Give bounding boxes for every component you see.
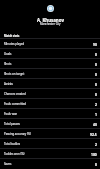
button[interactable]: Fouls committed (0, 98, 100, 108)
button[interactable]: Total tackles (0, 138, 100, 148)
staticText: 0 (95, 72, 97, 76)
staticText: Fouls committed (4, 102, 26, 106)
staticText: Fouls won (4, 112, 18, 116)
staticText: 90 (93, 42, 97, 46)
staticText: Total passes (4, 122, 20, 126)
button[interactable]: Passing accuracy (%) (0, 128, 100, 138)
staticText: 2 (95, 142, 97, 146)
staticText: Shots on target (4, 72, 25, 76)
staticText: Assists (4, 82, 13, 86)
staticText: Chances created (4, 92, 26, 96)
button[interactable]: Shots on target (0, 68, 100, 78)
button[interactable]: Chances created (0, 88, 100, 98)
staticText: 0 (95, 52, 97, 56)
staticText: 40 (93, 122, 97, 126)
staticText: 1 (95, 112, 97, 116)
staticText: Shots (4, 62, 12, 66)
button[interactable]: Goals (0, 48, 100, 58)
staticText: Manchester City (40, 22, 61, 26)
staticText: 0 (95, 162, 97, 166)
button[interactable]: Saves (0, 158, 100, 168)
staticText: 0 (95, 82, 97, 86)
staticText: Match stats (4, 34, 20, 38)
button[interactable]: Shots (0, 58, 100, 68)
staticText: 2 (95, 102, 97, 106)
button[interactable]: Fouls won (0, 108, 100, 118)
button[interactable]: Tackles won (%) (0, 148, 100, 158)
button[interactable]: Assists (0, 78, 100, 88)
staticText: Saves (4, 162, 12, 166)
button[interactable]: Total passes (0, 118, 100, 128)
staticText: A. Khusanov (37, 17, 64, 23)
button[interactable]: Minutes played (0, 38, 100, 48)
staticText: Tackles won (%) (4, 152, 25, 156)
staticText: 100 (91, 152, 97, 156)
staticText: Passing accuracy (%) (4, 132, 31, 136)
staticText: Goals (4, 52, 12, 56)
staticText: 92.5 (90, 132, 97, 136)
staticText: Total tackles (4, 142, 21, 146)
staticText: 0 (95, 62, 97, 66)
staticText: 0 (95, 92, 97, 96)
staticText: Minutes played (4, 42, 25, 46)
